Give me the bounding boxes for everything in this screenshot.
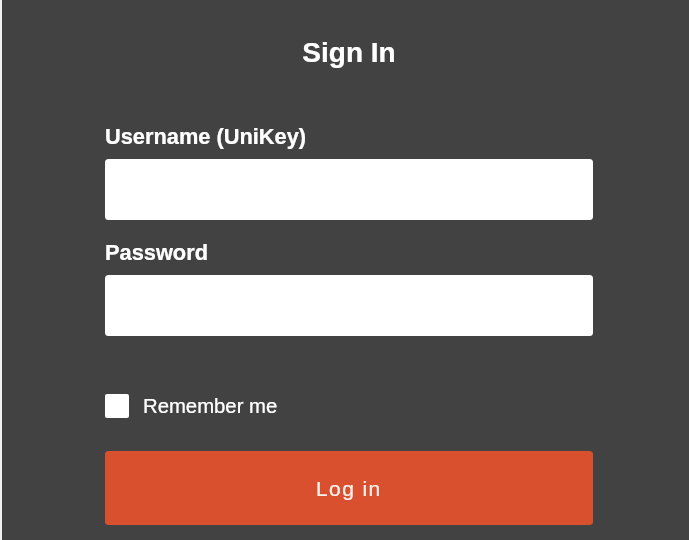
staticText: Username (UniKey) [105, 124, 307, 148]
staticText: Password [105, 240, 208, 264]
staticText: Remember me [143, 395, 278, 418]
button[interactable]: Remember me [105, 394, 278, 418]
button[interactable]: Log in [105, 451, 593, 525]
staticText: Log in [316, 477, 382, 500]
staticText: Sign In [302, 37, 396, 68]
